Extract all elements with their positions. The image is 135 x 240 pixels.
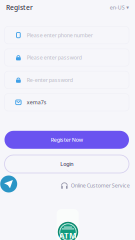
staticText: xema7s (27, 99, 47, 106)
button[interactable]: Re-enter password (4, 71, 129, 89)
staticText: Please enter password (27, 54, 82, 61)
staticText: ▾ (126, 4, 129, 11)
button[interactable]: Register Now (4, 131, 129, 149)
staticText: Please enter phone number (27, 32, 93, 39)
button[interactable]: en-US (108, 1, 131, 14)
staticText: en-US (110, 4, 125, 11)
button[interactable]: Login (4, 155, 129, 173)
staticText: Register (6, 3, 33, 12)
button[interactable]: Telegram (0, 174, 18, 193)
staticText: Online Customer Service (71, 182, 130, 189)
staticText: Login (60, 160, 73, 168)
staticText: Re-enter password (27, 76, 73, 83)
button[interactable]: xema7s (4, 94, 129, 111)
staticText: ATM (59, 230, 77, 240)
staticText: Register Now (51, 136, 83, 143)
button[interactable]: Please enter phone number (4, 26, 129, 44)
button[interactable]: Please enter password (4, 49, 129, 66)
button[interactable]: Online Customer Service (61, 179, 130, 192)
